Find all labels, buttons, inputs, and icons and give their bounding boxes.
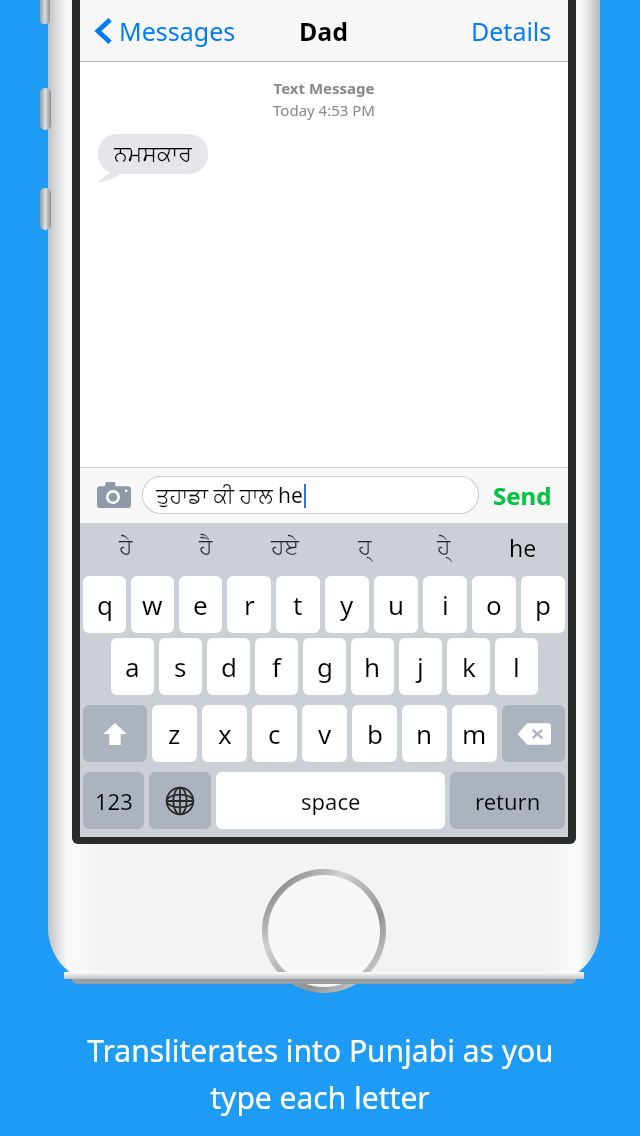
button[interactable]: Switch keyboard language [149,772,211,829]
button[interactable]: Send [489,473,556,518]
staticText: v [318,716,332,751]
staticText: Text Message [80,78,568,98]
button[interactable]: n [402,705,447,762]
button[interactable]: d [207,638,250,695]
staticText: e [193,587,208,622]
staticText: f [272,649,281,684]
staticText: y [340,587,354,622]
button[interactable]: Details [467,8,556,54]
button[interactable]: Delete [502,705,565,762]
button[interactable]: space [216,772,445,829]
button[interactable]: l [495,638,538,695]
staticText: i [442,587,449,622]
staticText: l [513,649,520,684]
staticText: ਤੁਹਾਡਾ ਕੀ ਹਾਲ he [156,481,303,510]
staticText: t [293,587,303,622]
button[interactable]: Camera [92,473,136,517]
button[interactable]: p [521,576,565,633]
staticText: c [268,716,281,751]
staticText: ਹ੍ [358,536,372,558]
staticText: Today 4:53 PM [80,100,568,120]
button[interactable]: r [227,576,271,633]
button[interactable]: a [111,638,154,695]
button[interactable]: g [303,638,346,695]
staticText: b [367,716,383,751]
button[interactable]: u [374,576,418,633]
button[interactable]: k [447,638,490,695]
staticText: m [462,716,487,751]
staticText: h [364,649,381,684]
button[interactable]: ਹੈ [166,523,246,571]
button[interactable]: v [302,705,347,762]
staticText: s [174,649,187,684]
button[interactable]: e [179,576,222,633]
staticText: Dad [299,14,349,48]
button[interactable]: z [152,705,197,762]
button[interactable]: t [276,576,320,633]
button[interactable]: m [452,705,497,762]
button[interactable]: s [159,638,202,695]
staticText: ਹਏ [271,536,300,558]
button[interactable]: f [255,638,298,695]
button[interactable]: x [202,705,247,762]
staticText: z [168,716,181,751]
staticText: ਹੇ [119,536,133,558]
staticText: ਨਮਸਕਾਰ [114,143,192,165]
button[interactable]: ਤੁਹਾਡਾ ਕੀ ਹਾਲ he [142,476,479,514]
button[interactable]: 123 [83,772,144,829]
staticText: space [301,786,361,816]
staticText: j [417,649,424,684]
button[interactable]: ਹ੍ [325,523,404,571]
button[interactable]: o [472,576,516,633]
staticText: n [416,716,433,751]
staticText: Messages [119,14,236,48]
staticText: ਹੇ੍ [437,536,451,558]
staticText: g [317,649,333,684]
button[interactable]: b [352,705,397,762]
staticText: k [462,649,476,684]
button[interactable]: ਹਏ [246,523,325,571]
button[interactable]: he [483,523,562,571]
button[interactable]: ਹੇ [86,523,166,571]
button[interactable]: Messages [92,8,240,54]
staticText: q [97,587,113,622]
button[interactable]: ਹੇ੍ [404,523,483,571]
staticText: a [125,649,140,684]
button[interactable]: w [131,576,174,633]
button[interactable]: Shift [83,705,147,762]
button[interactable]: j [399,638,442,695]
button[interactable]: i [423,576,467,633]
staticText: u [388,587,405,622]
staticText: d [221,649,237,684]
staticText: return [475,786,541,816]
staticText: x [218,716,232,751]
button[interactable]: c [252,705,297,762]
staticText: Transliterates into Punjabi as you [87,1030,554,1071]
button[interactable]: Home [262,869,386,993]
button[interactable]: ਨਮਸਕਾਰ [98,134,208,174]
staticText: w [142,587,163,622]
staticText: 123 [95,786,133,816]
staticText: type each letter [210,1077,430,1118]
staticText: p [535,587,551,622]
button[interactable]: return [450,772,565,829]
staticText: r [244,587,255,622]
button[interactable]: y [325,576,369,633]
button[interactable]: h [351,638,394,695]
staticText: he [509,532,537,563]
button[interactable]: q [83,576,126,633]
staticText: ਹੈ [199,536,213,558]
staticText: o [486,587,502,622]
